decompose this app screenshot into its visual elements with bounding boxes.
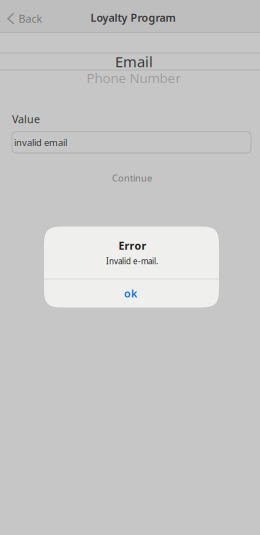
button[interactable]: ok [44, 279, 219, 307]
button[interactable]: Phone Number [0, 72, 260, 83]
staticText: Phone Number [86, 69, 181, 87]
staticText: Back [19, 11, 43, 26]
staticText: Loyalty Program [90, 10, 175, 25]
button[interactable]: invalid email [9, 132, 251, 153]
staticText: ok [124, 286, 137, 300]
staticText: Invalid e-mail. [106, 256, 158, 266]
staticText: Error [118, 239, 146, 253]
button[interactable]: Back [0, 0, 51, 32]
staticText: Email [115, 52, 153, 71]
staticText: Continue [112, 172, 152, 184]
staticText: Value [12, 112, 40, 126]
staticText: invalid email [14, 136, 67, 149]
button[interactable]: Email [0, 55, 260, 67]
button[interactable]: Continue [0, 171, 260, 185]
